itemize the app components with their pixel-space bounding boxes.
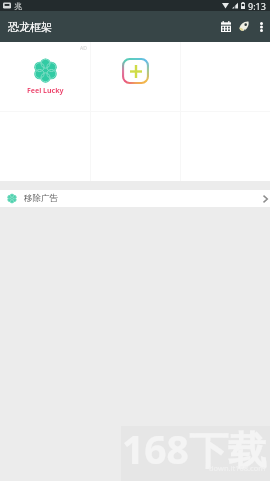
- button[interactable]: 移除广告: [0, 190, 270, 207]
- button[interactable]: Boost: [235, 11, 252, 42]
- staticText: Feel Lucky: [27, 86, 64, 96]
- button[interactable]: Calendar: [217, 11, 235, 42]
- button[interactable]: [91, 42, 180, 111]
- staticText: down.it168.com: [209, 463, 266, 473]
- button[interactable]: Feel Lucky: [0, 42, 90, 111]
- staticText: 168下载: [122, 422, 267, 475]
- staticText: AD: [80, 45, 87, 52]
- staticText: 9:13: [248, 0, 266, 11]
- button[interactable]: More options: [252, 11, 270, 42]
- staticText: 兆: [14, 1, 22, 11]
- staticText: 移除广告: [24, 193, 58, 204]
- staticText: 恐龙框架: [8, 20, 52, 34]
